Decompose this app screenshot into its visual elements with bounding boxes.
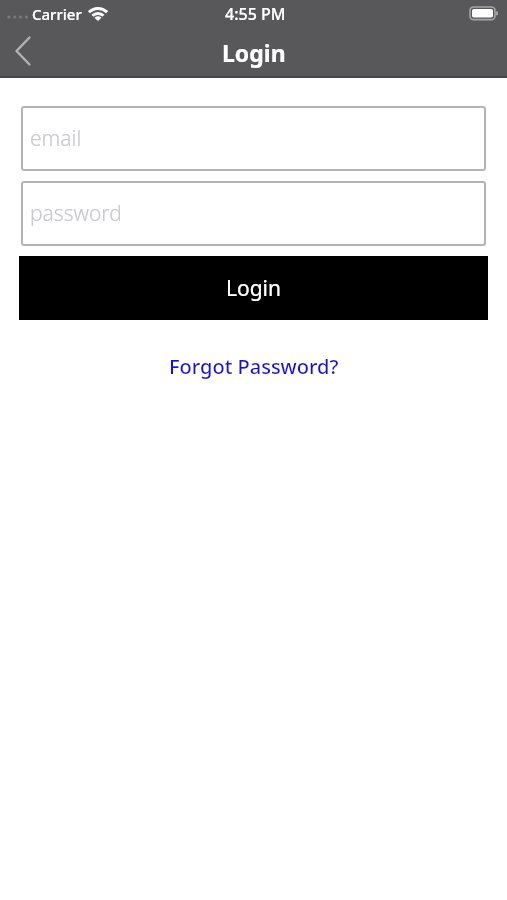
- button[interactable]: Login: [19, 256, 488, 320]
- button[interactable]: password: [21, 181, 486, 246]
- staticText: password: [30, 199, 122, 228]
- button[interactable]: Forgot Password?: [169, 353, 339, 380]
- staticText: Login: [226, 274, 282, 303]
- staticText: Forgot Password?: [169, 353, 339, 380]
- staticText: 4:55 PM: [225, 3, 286, 25]
- button[interactable]: [10, 34, 36, 68]
- staticText: Login: [222, 37, 286, 68]
- button[interactable]: email: [21, 106, 486, 171]
- staticText: email: [30, 124, 82, 153]
- staticText: Carrier: [32, 4, 82, 24]
